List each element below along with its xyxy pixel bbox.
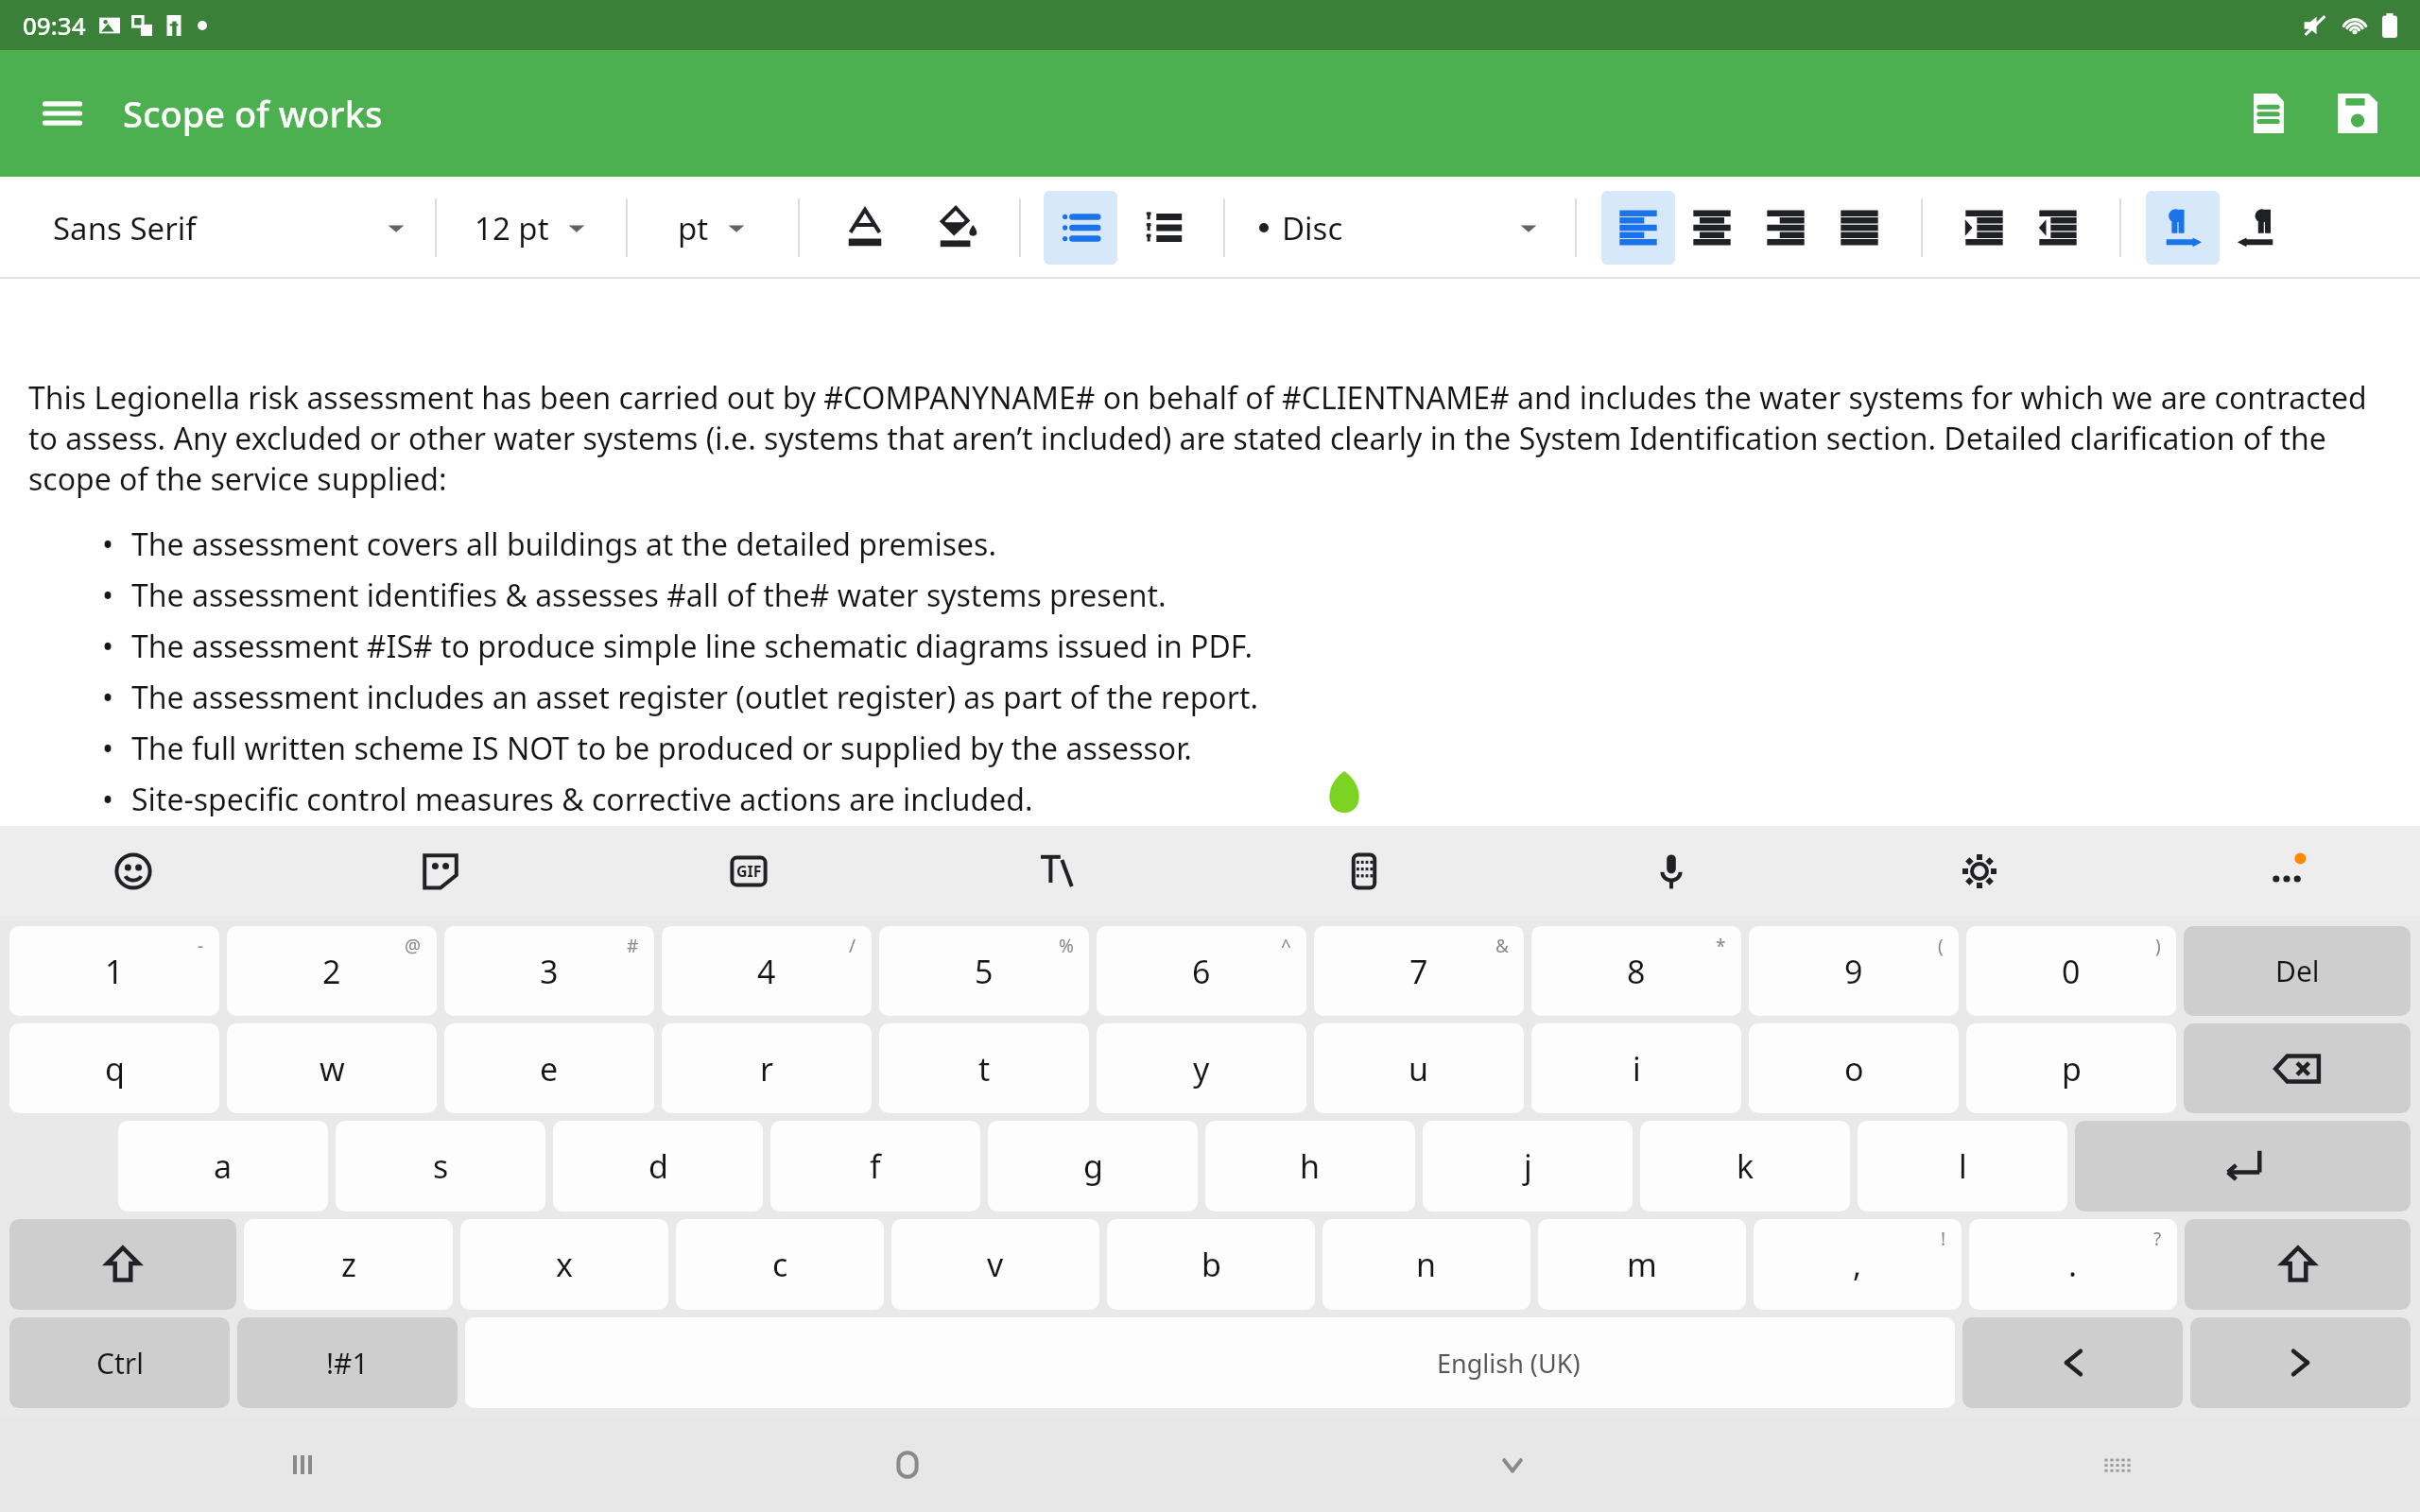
button[interactable]: f: [770, 1121, 980, 1211]
staticText: 5: [975, 950, 994, 993]
button[interactable]: b: [1107, 1219, 1315, 1310]
button[interactable]: Move left: [1962, 1317, 2183, 1408]
button[interactable]: z: [244, 1219, 453, 1310]
button[interactable]: Disc: [1225, 177, 1575, 279]
button[interactable]: Backspace: [2184, 1023, 2411, 1113]
button[interactable]: p: [1966, 1023, 2176, 1113]
button[interactable]: English (UK): [465, 1317, 1955, 1408]
button[interactable]: ^: [1097, 926, 1306, 1016]
button[interactable]: r: [662, 1023, 872, 1113]
button[interactable]: %: [879, 926, 1089, 1016]
button[interactable]: More options: [2257, 842, 2316, 901]
staticText: Sans Serif: [53, 207, 197, 249]
button[interactable]: /: [662, 926, 872, 1016]
button[interactable]: Stickers: [411, 842, 470, 901]
staticText: b: [1201, 1243, 1221, 1286]
staticText: h: [1300, 1144, 1321, 1188]
button[interactable]: #: [444, 926, 654, 1016]
button[interactable]: Hide keyboard: [1210, 1417, 1815, 1512]
button[interactable]: l: [1858, 1121, 2067, 1211]
button[interactable]: a: [118, 1121, 328, 1211]
button[interactable]: Del: [2184, 926, 2411, 1016]
button[interactable]: pt: [628, 177, 798, 279]
staticText: English (UK): [1437, 1346, 1581, 1381]
button[interactable]: Keyboard modes: [1335, 842, 1393, 901]
staticText: 8: [1627, 950, 1646, 993]
button[interactable]: Decrease indent: [2021, 191, 2095, 265]
button[interactable]: Right to left: [2220, 191, 2293, 265]
button[interactable]: !: [1754, 1219, 1962, 1310]
staticText: 9: [1844, 950, 1863, 993]
button[interactable]: Home: [605, 1417, 1210, 1512]
staticText: l: [1959, 1144, 1967, 1188]
button[interactable]: Handwriting: [1027, 842, 1085, 901]
button[interactable]: v: [891, 1219, 1099, 1310]
button[interactable]: g: [988, 1121, 1198, 1211]
button[interactable]: y: [1097, 1023, 1306, 1113]
button[interactable]: ): [1966, 926, 2176, 1016]
button[interactable]: *: [1531, 926, 1741, 1016]
staticText: 09:34: [23, 9, 86, 42]
button[interactable]: Shift: [9, 1219, 236, 1310]
button[interactable]: d: [553, 1121, 763, 1211]
button[interactable]: t: [879, 1023, 1089, 1113]
button[interactable]: k: [1640, 1121, 1850, 1211]
button[interactable]: Shift: [2185, 1219, 2411, 1310]
button[interactable]: Ctrl: [9, 1317, 230, 1408]
button[interactable]: Align right: [1749, 191, 1823, 265]
button[interactable]: Settings: [1950, 842, 2009, 901]
staticText: f: [870, 1144, 881, 1188]
button[interactable]: Align left: [1601, 191, 1675, 265]
button[interactable]: q: [9, 1023, 219, 1113]
button[interactable]: Increase indent: [1947, 191, 2021, 265]
staticText: u: [1409, 1047, 1429, 1091]
staticText: The assessment #IS# to produce simple li…: [131, 626, 1253, 667]
button[interactable]: 12 pt: [437, 177, 626, 279]
button[interactable]: !#1: [237, 1317, 458, 1408]
button[interactable]: Bulleted list: [1044, 191, 1117, 265]
button[interactable]: -: [9, 926, 219, 1016]
button[interactable]: &: [1314, 926, 1524, 1016]
staticText: x: [556, 1243, 573, 1286]
button[interactable]: j: [1423, 1121, 1633, 1211]
button[interactable]: o: [1749, 1023, 1959, 1113]
staticText: 3: [540, 950, 559, 993]
staticText: p: [2062, 1047, 2082, 1091]
button[interactable]: GIF: [719, 842, 778, 901]
button[interactable]: Recents: [0, 1417, 605, 1512]
button[interactable]: Highlight colour: [921, 191, 994, 265]
button[interactable]: Keyboard layout: [1815, 1417, 2420, 1512]
button[interactable]: i: [1531, 1023, 1741, 1113]
button[interactable]: s: [336, 1121, 545, 1211]
button[interactable]: Justify: [1823, 191, 1896, 265]
button[interactable]: Enter: [2075, 1121, 2411, 1211]
button[interactable]: Menu: [23, 74, 102, 153]
button[interactable]: Numbered list: [1127, 191, 1201, 265]
staticText: Del: [2275, 952, 2320, 990]
staticText: z: [341, 1243, 356, 1286]
button[interactable]: w: [227, 1023, 437, 1113]
button[interactable]: u: [1314, 1023, 1524, 1113]
button[interactable]: n: [1322, 1219, 1530, 1310]
button[interactable]: @: [227, 926, 437, 1016]
button[interactable]: Document: [2229, 74, 2308, 153]
button[interactable]: x: [460, 1219, 668, 1310]
button[interactable]: e: [444, 1023, 654, 1113]
staticText: &: [1495, 934, 1509, 958]
button[interactable]: m: [1538, 1219, 1746, 1310]
button[interactable]: Left to right: [2146, 191, 2220, 265]
button[interactable]: Sans Serif: [0, 177, 435, 279]
button[interactable]: Align centre: [1675, 191, 1749, 265]
button[interactable]: Move right: [2190, 1317, 2411, 1408]
button[interactable]: Voice input: [1642, 842, 1701, 901]
button[interactable]: ?: [1969, 1219, 2177, 1310]
staticText: n: [1416, 1243, 1437, 1286]
button[interactable]: h: [1205, 1121, 1415, 1211]
button[interactable]: (: [1749, 926, 1959, 1016]
button[interactable]: Save: [2318, 74, 2397, 153]
button[interactable]: c: [676, 1219, 884, 1310]
staticText: ^: [1281, 934, 1291, 958]
button[interactable]: Text colour: [828, 191, 902, 265]
staticText: #: [627, 934, 639, 958]
button[interactable]: Emoji: [104, 842, 163, 901]
